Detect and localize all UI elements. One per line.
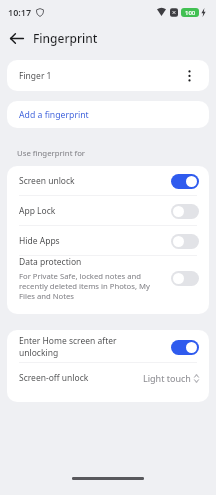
button[interactable] [171,174,199,189]
staticText: Hide Apps [19,235,60,247]
button[interactable] [6,27,28,49]
staticText: Screen-off unlock [19,372,89,384]
button[interactable] [171,271,199,286]
staticText: App Lock [19,205,56,217]
staticText: Screen unlock [19,175,75,187]
staticText: Add a fingerprint [19,109,89,121]
button[interactable] [171,204,199,219]
staticText: Use fingerprint for [17,148,86,159]
staticText: Light touch [143,372,191,384]
staticText: 100 [185,9,196,17]
staticText: Fingerprint [33,30,98,46]
button[interactable]: Add a fingerprint [7,101,209,128]
button[interactable] [171,234,199,249]
button[interactable]: Hide Apps [7,226,209,256]
button[interactable]: Data protection [7,256,209,314]
button[interactable] [179,67,199,85]
button[interactable]: Finger 1 [7,60,209,91]
staticText: 10:17 [8,6,32,18]
button[interactable] [171,340,199,355]
staticText: Data protection [19,256,82,268]
button[interactable]: Screen unlock [7,166,209,196]
staticText: Finger 1 [19,70,52,82]
button[interactable]: Screen-off unlock [7,363,209,393]
button[interactable]: Enter Home screen after unlocking [7,330,209,363]
staticText: Enter Home screen after unlocking [19,335,117,359]
staticText: For Private Safe, locked notes and recen… [19,271,150,301]
button[interactable]: App Lock [7,196,209,226]
